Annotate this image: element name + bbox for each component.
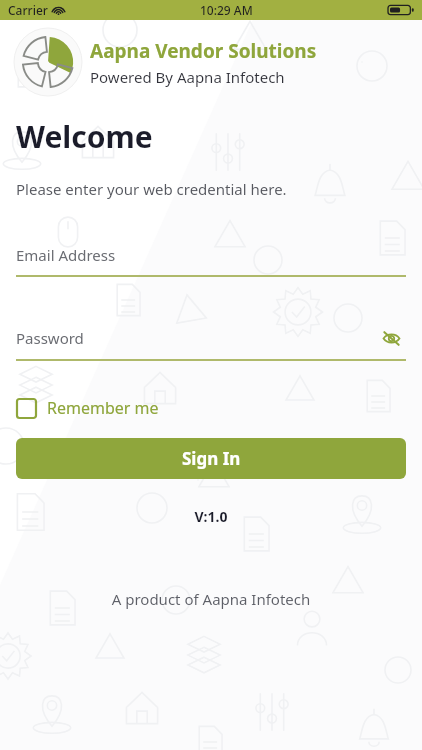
- button[interactable]: Remember me: [16, 397, 159, 419]
- button[interactable]: Email Address: [16, 245, 406, 277]
- staticText: Powered By Aapna Infotech: [90, 67, 285, 87]
- staticText: Password: [16, 328, 84, 348]
- button[interactable]: Show password: [376, 323, 406, 353]
- button[interactable]: Password: [16, 323, 406, 361]
- staticText: V:1.0: [0, 507, 422, 526]
- staticText: Welcome: [16, 116, 153, 157]
- staticText: 10:29 AM: [200, 2, 253, 18]
- button[interactable]: Sign In: [16, 438, 406, 479]
- staticText: Please enter your web credential here.: [16, 179, 287, 199]
- staticText: Aapna Vendor Solutions: [90, 38, 317, 64]
- staticText: Sign In: [182, 447, 241, 470]
- staticText: Carrier: [8, 2, 48, 18]
- staticText: Remember me: [47, 397, 159, 419]
- staticText: A product of Aapna Infotech: [0, 589, 422, 609]
- staticText: Email Address: [16, 245, 116, 265]
